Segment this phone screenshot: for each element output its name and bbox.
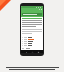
button[interactable]: Action — [21, 8, 43, 17]
button[interactable] — [22, 36, 42, 38]
button[interactable] — [22, 44, 42, 46]
button[interactable] — [22, 38, 42, 40]
button[interactable] — [22, 42, 42, 44]
button[interactable] — [22, 40, 42, 42]
button[interactable]: Back — [25, 51, 27, 53]
button[interactable]: Home — [31, 51, 33, 53]
button[interactable]: Recents — [37, 51, 39, 53]
